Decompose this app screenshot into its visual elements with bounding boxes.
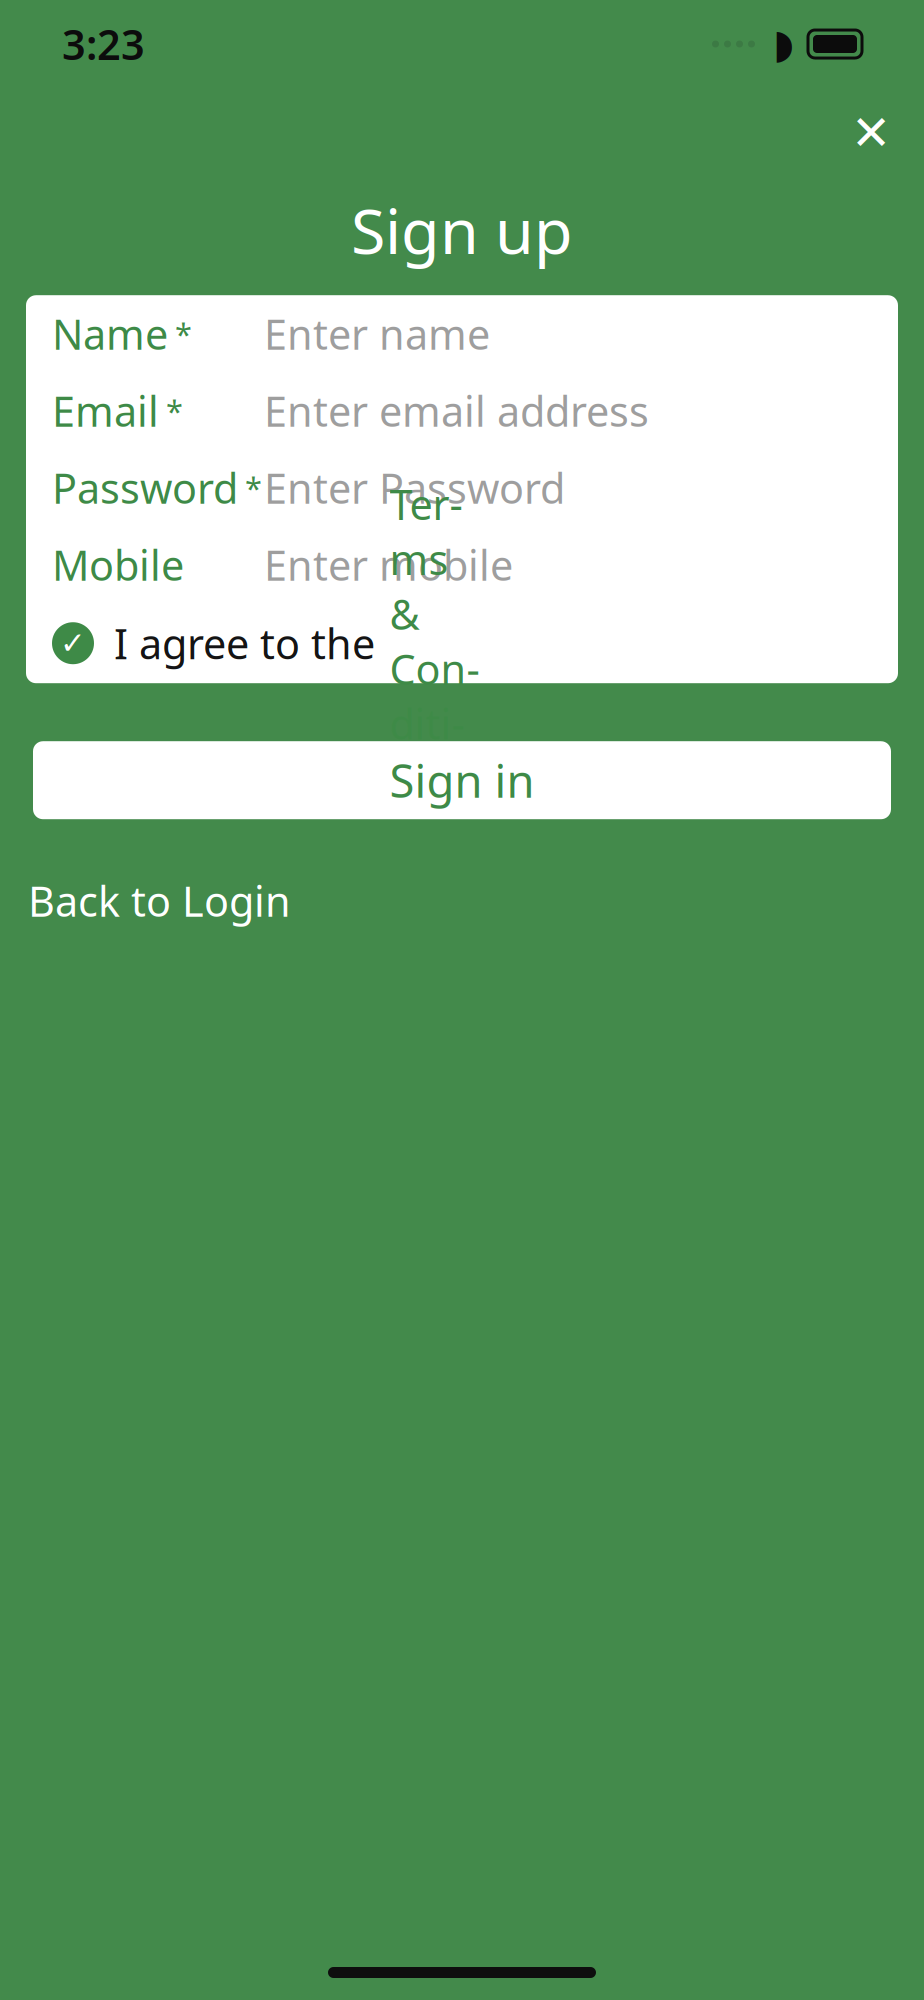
staticText: Enter mobile (264, 537, 513, 592)
button[interactable]: Back to Login (0, 873, 924, 928)
staticText: * (175, 313, 192, 354)
staticText: Enter name (264, 306, 490, 361)
staticText: Password (52, 460, 238, 515)
staticText: * (245, 467, 262, 508)
staticText: 3:23 (62, 17, 145, 71)
staticText: Mobile (52, 537, 184, 592)
button[interactable]: Mobile (26, 526, 898, 603)
button[interactable]: Password (26, 449, 898, 526)
staticText: ✕ (851, 106, 891, 160)
button[interactable]: Close (844, 106, 898, 160)
staticText: I agree to the (114, 616, 386, 671)
button[interactable]: Email (26, 372, 898, 449)
staticText: Back to Login (28, 873, 291, 928)
staticText: Terms & Conditions (389, 477, 479, 806)
staticText: * (166, 390, 183, 431)
staticText: ✓ (60, 626, 86, 661)
staticText: Name (52, 306, 168, 361)
staticText: Sign in (389, 750, 534, 810)
staticText: Enter email address (264, 383, 649, 438)
staticText: ◗ (773, 21, 794, 67)
staticText: Sign up (351, 188, 573, 271)
staticText: Email (52, 383, 159, 438)
button[interactable]: ✓ (26, 603, 898, 683)
staticText: Enter Password (264, 460, 565, 515)
button[interactable]: Sign in (33, 741, 891, 819)
button[interactable]: Name (26, 295, 898, 372)
